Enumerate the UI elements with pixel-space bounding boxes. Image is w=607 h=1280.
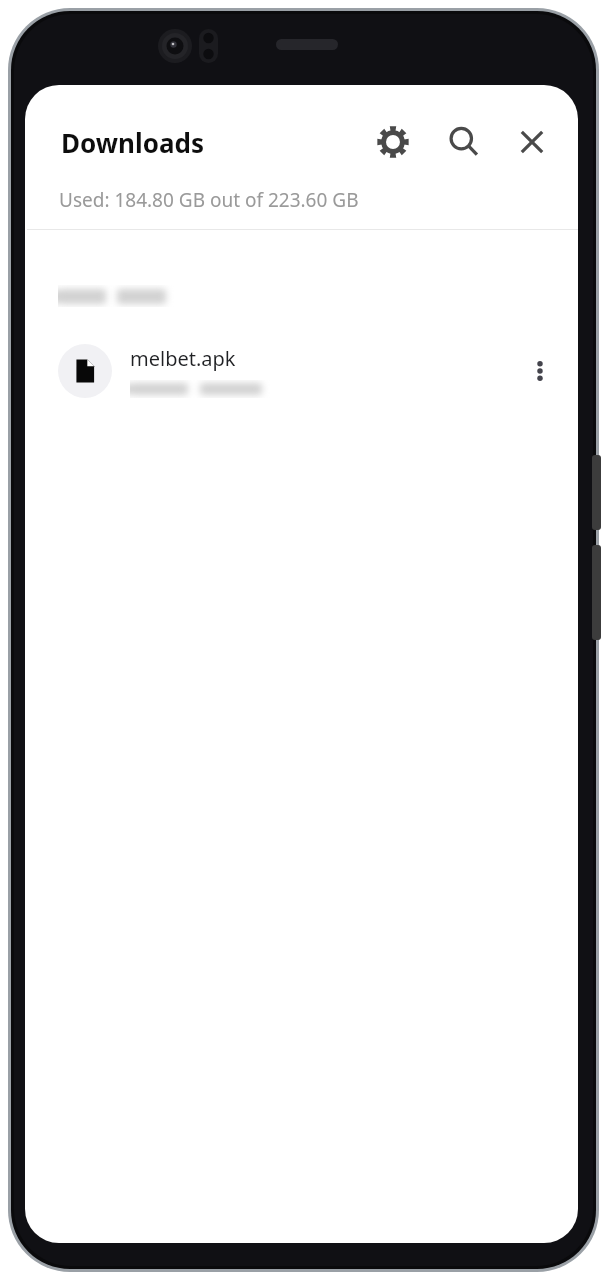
button[interactable]: Close — [506, 116, 558, 168]
button[interactable]: Settings — [367, 116, 419, 168]
button[interactable]: melbet.apk — [25, 329, 578, 413]
staticText: melbet.apk — [130, 345, 236, 372]
button[interactable]: Search — [438, 116, 490, 168]
button[interactable]: More options — [514, 345, 566, 397]
staticText: Downloads — [61, 125, 204, 160]
staticText: Used: 184.80 GB out of 223.60 GB — [59, 187, 359, 213]
